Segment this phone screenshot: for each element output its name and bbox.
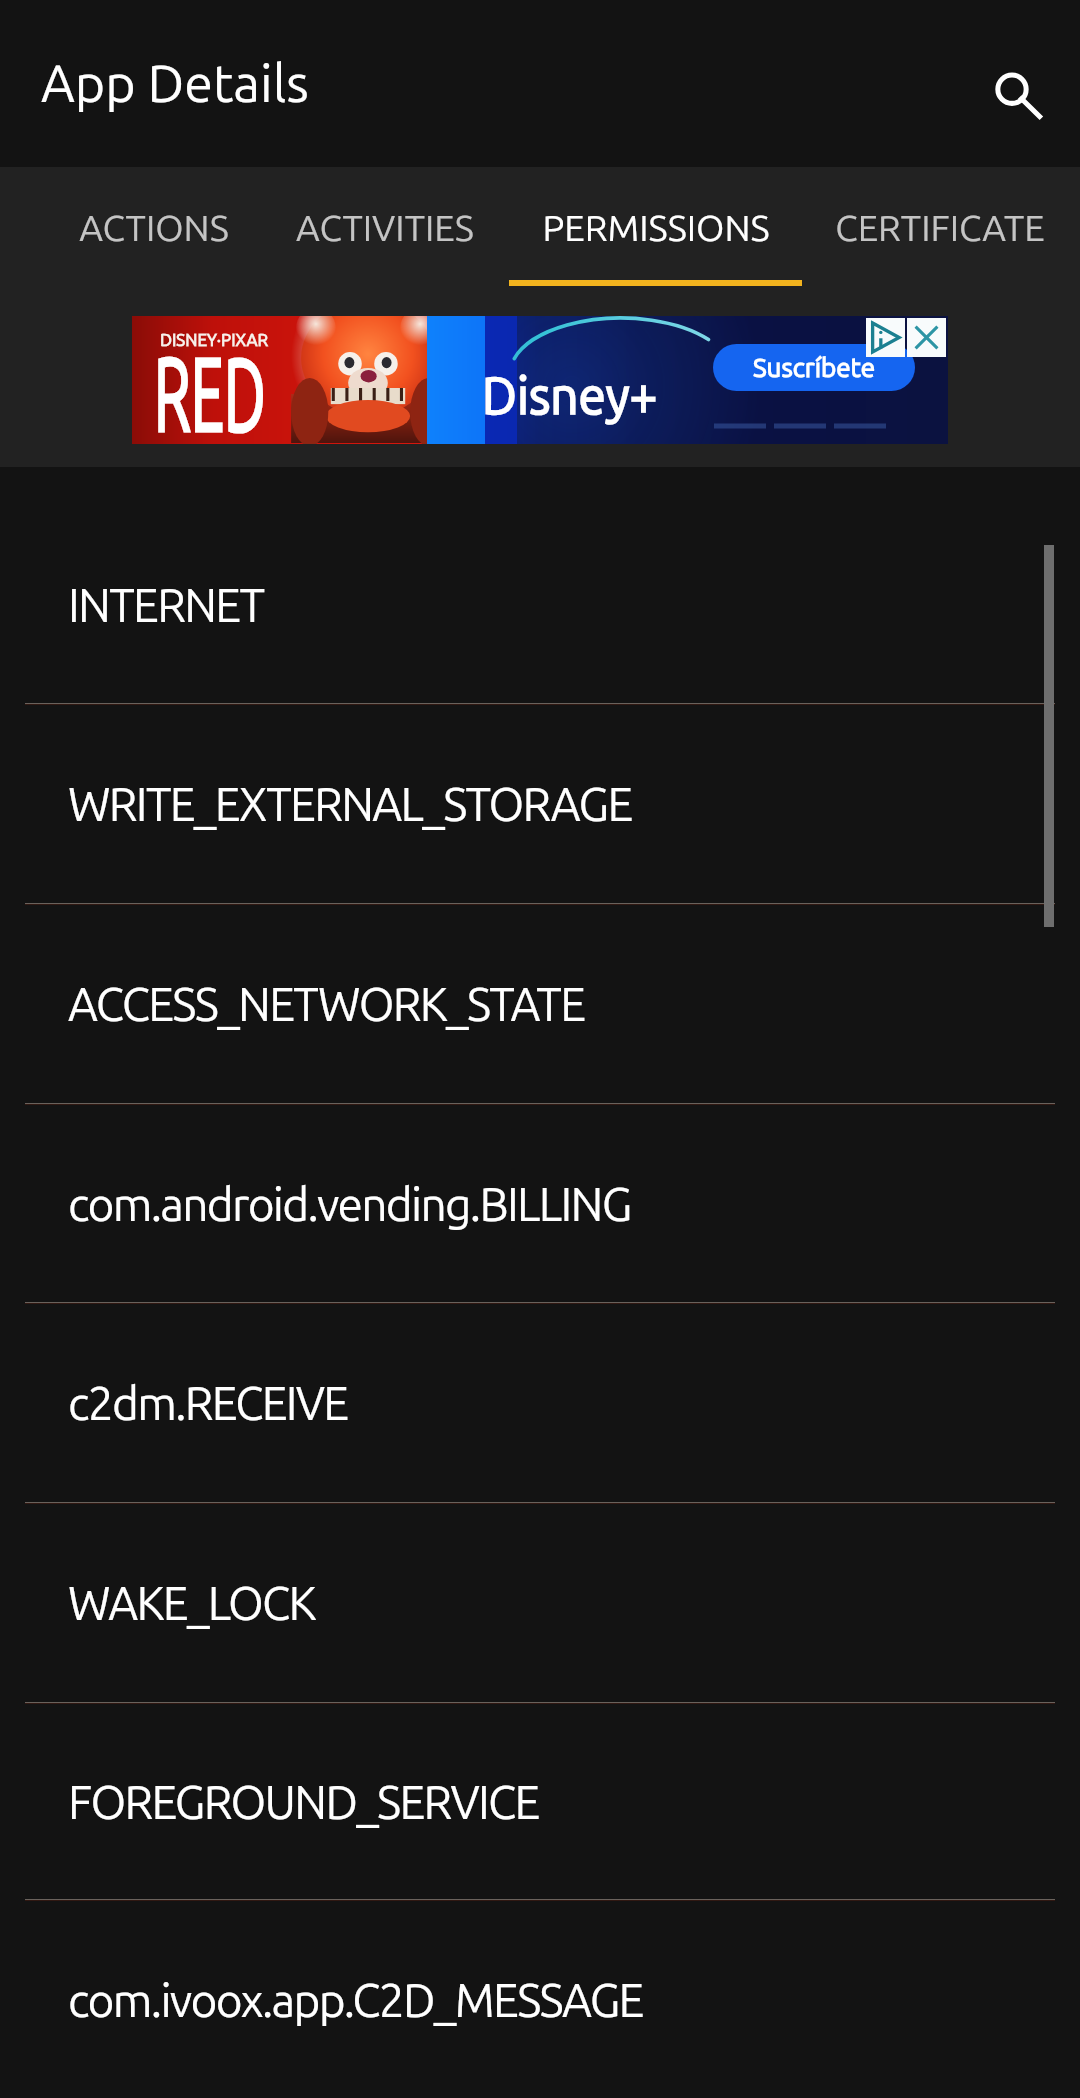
staticText: Suscríbete	[753, 353, 876, 382]
button[interactable]: CERTIFICATE	[802, 167, 1078, 286]
button[interactable]: DISNEY·PIXAR	[132, 316, 948, 444]
staticText: com.android.vending.BILLING	[68, 1178, 631, 1230]
button[interactable]: Ad info	[866, 318, 905, 357]
button[interactable]: INTERNET	[0, 506, 1080, 705]
button[interactable]: Search	[972, 48, 1064, 140]
button[interactable]: Close ad	[907, 318, 946, 357]
staticText: INTERNET	[68, 579, 264, 631]
staticText: WAKE_LOCK	[68, 1577, 315, 1629]
staticText: WRITE_EXTERNAL_STORAGE	[68, 778, 632, 830]
staticText: ACCESS_NETWORK_STATE	[68, 978, 585, 1030]
button[interactable]: ACCESS_NETWORK_STATE	[0, 905, 1080, 1105]
staticText: FOREGROUND_SERVICE	[68, 1776, 539, 1828]
staticText: ACTIONS	[79, 207, 229, 248]
staticText: ACTIVITIES	[296, 207, 474, 248]
button[interactable]: ACTIVITIES	[260, 167, 509, 286]
staticText: c2dm.RECEIVE	[68, 1377, 348, 1429]
button[interactable]: ACTIONS	[48, 167, 260, 286]
button[interactable]: com.android.vending.BILLING	[0, 1105, 1080, 1304]
staticText: PERMISSIONS	[542, 207, 770, 248]
staticText: DISNEY·PIXAR	[160, 330, 269, 349]
staticText: com.ivoox.app.C2D_MESSAGE	[68, 1974, 643, 2026]
button[interactable]: WRITE_EXTERNAL_STORAGE	[0, 705, 1080, 905]
button[interactable]: com.ivoox.app.C2D_MESSAGE	[0, 1901, 1080, 2098]
staticText: CERTIFICATE	[835, 207, 1045, 248]
button[interactable]: PERMISSIONS	[509, 167, 802, 286]
staticText: Disney+	[482, 366, 658, 424]
button[interactable]: c2dm.RECEIVE	[0, 1304, 1080, 1504]
button[interactable]: FOREGROUND_SERVICE	[0, 1704, 1080, 1901]
button[interactable]: Suscríbete	[713, 344, 915, 391]
staticText: RED	[154, 334, 266, 444]
button[interactable]: WAKE_LOCK	[0, 1504, 1080, 1704]
staticText: App Details	[41, 54, 309, 112]
